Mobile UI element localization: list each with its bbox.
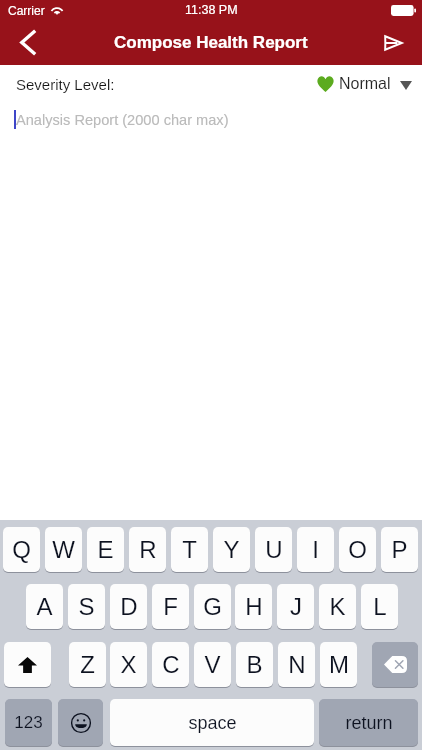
button[interactable]: I: [297, 527, 334, 572]
staticText: P: [391, 536, 408, 563]
staticText: M: [329, 651, 349, 678]
button[interactable]: Send: [362, 20, 422, 65]
button[interactable]: return: [319, 699, 418, 746]
button[interactable]: R: [129, 527, 166, 572]
staticText: Analysis Report (2000 char max): [16, 112, 229, 128]
staticText: J: [290, 593, 302, 620]
staticText: 11:38 PM: [185, 3, 238, 17]
staticText: S: [78, 593, 95, 620]
staticText: K: [329, 593, 346, 620]
button[interactable]: A: [26, 584, 63, 629]
staticText: 123: [14, 713, 43, 732]
staticText: W: [52, 536, 75, 563]
button[interactable]: Y: [213, 527, 250, 572]
button[interactable]: P: [381, 527, 418, 572]
button[interactable]: J: [277, 584, 314, 629]
button[interactable]: M: [320, 642, 357, 687]
staticText: O: [348, 536, 367, 563]
staticText: return: [345, 713, 393, 733]
button[interactable]: Shift: [4, 642, 51, 687]
staticText: H: [245, 593, 263, 620]
button[interactable]: H: [235, 584, 272, 629]
staticText: F: [163, 593, 178, 620]
staticText: E: [97, 536, 114, 563]
button[interactable]: T: [171, 527, 208, 572]
button[interactable]: V: [194, 642, 231, 687]
staticText: A: [36, 593, 53, 620]
staticText: X: [120, 651, 137, 678]
staticText: Compose Health Report: [114, 33, 308, 52]
staticText: Q: [12, 536, 31, 563]
staticText: Z: [80, 651, 95, 678]
button[interactable]: Z: [69, 642, 106, 687]
button[interactable]: S: [68, 584, 105, 629]
staticText: C: [162, 651, 180, 678]
staticText: B: [246, 651, 263, 678]
button[interactable]: X: [110, 642, 147, 687]
staticText: Carrier: [8, 4, 45, 17]
button[interactable]: Emoji: [58, 699, 103, 746]
staticText: space: [188, 713, 237, 733]
button[interactable]: Back: [0, 20, 56, 65]
staticText: U: [265, 536, 283, 563]
button[interactable]: Backspace: [372, 642, 418, 687]
button[interactable]: space: [110, 699, 314, 746]
staticText: D: [120, 593, 138, 620]
button[interactable]: W: [45, 527, 82, 572]
staticText: L: [373, 593, 387, 620]
staticText: N: [288, 651, 306, 678]
button[interactable]: G: [194, 584, 231, 629]
button[interactable]: E: [87, 527, 124, 572]
button[interactable]: D: [110, 584, 147, 629]
button[interactable]: 123: [5, 699, 52, 746]
button[interactable]: L: [361, 584, 398, 629]
button[interactable]: N: [278, 642, 315, 687]
staticText: Severity Level:: [16, 76, 115, 93]
staticText: R: [139, 536, 157, 563]
button[interactable]: F: [152, 584, 189, 629]
staticText: Normal: [339, 75, 391, 93]
staticText: V: [204, 651, 221, 678]
button[interactable]: Q: [3, 527, 40, 572]
staticText: G: [203, 593, 222, 620]
button[interactable]: C: [152, 642, 189, 687]
button[interactable]: B: [236, 642, 273, 687]
staticText: I: [312, 536, 319, 563]
button[interactable]: U: [255, 527, 292, 572]
staticText: Y: [223, 536, 240, 563]
staticText: T: [182, 536, 197, 563]
button[interactable]: O: [339, 527, 376, 572]
button[interactable]: Normal: [310, 65, 422, 103]
button[interactable]: K: [319, 584, 356, 629]
